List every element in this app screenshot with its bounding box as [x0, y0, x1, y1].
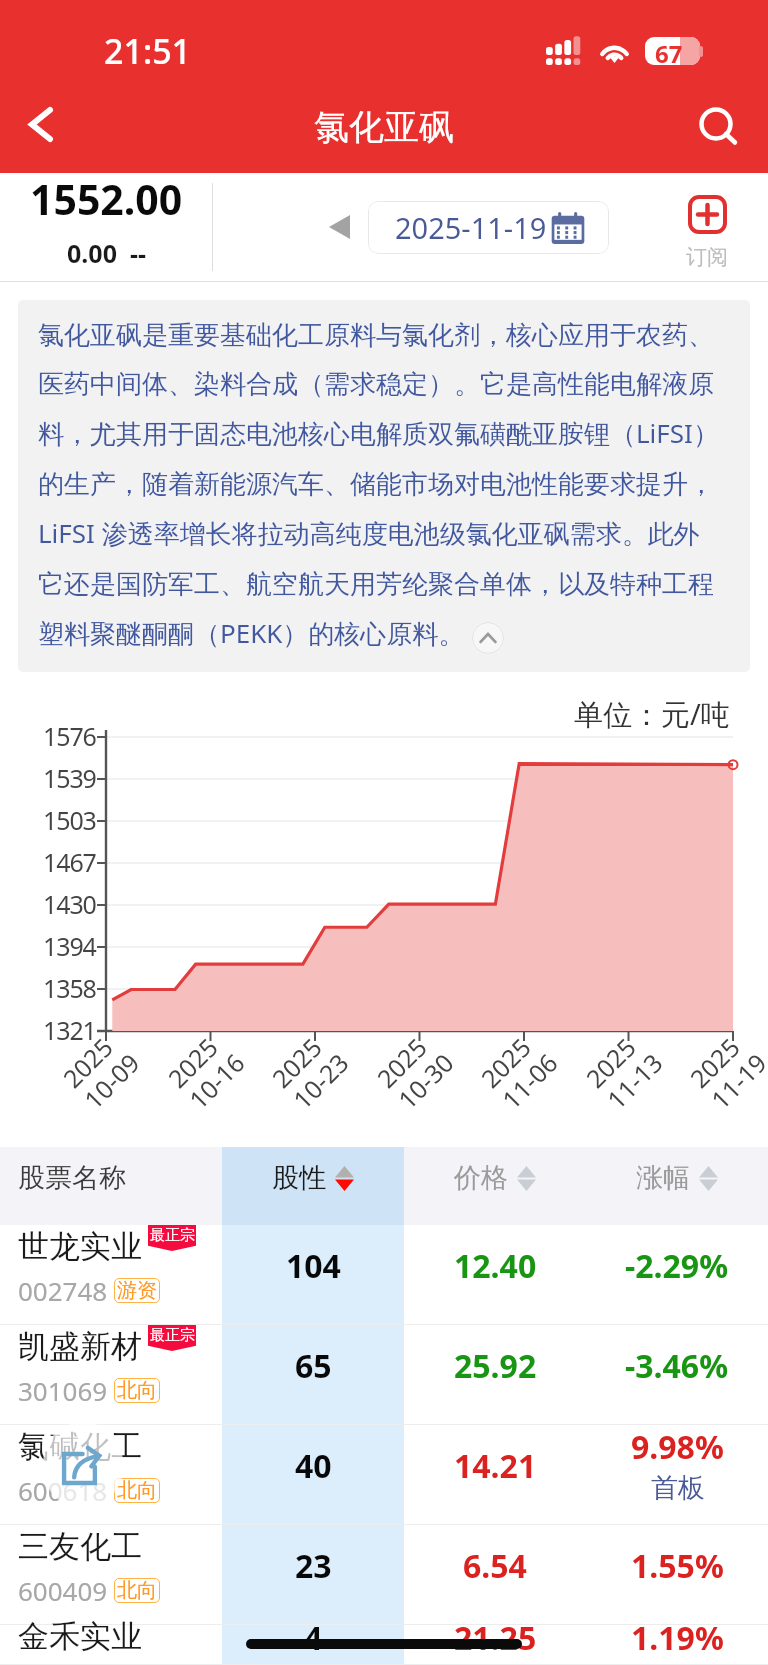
- staticText: 21:51: [104, 28, 192, 74]
- staticText: 1503: [43, 803, 96, 837]
- staticText: 2025 10-30: [369, 1024, 461, 1116]
- button[interactable]: 氯化亚砜是重要基础化工原料与氯化剂，核心应用于农药、 医药中间体、染料合成（需求…: [18, 300, 750, 672]
- staticText: 氯碱化工: [18, 1427, 142, 1466]
- staticText: 最正宗: [150, 1326, 195, 1345]
- staticText: 涨幅: [636, 1161, 690, 1195]
- staticText: -2.29%: [625, 1244, 729, 1288]
- staticText: 1430: [43, 887, 96, 921]
- staticText: 1576: [43, 719, 96, 753]
- staticText: 1467: [43, 845, 96, 879]
- staticText: 2025 10-23: [264, 1024, 356, 1116]
- staticText: 2025 11-13: [578, 1024, 670, 1116]
- staticText: 2025-11-19: [395, 208, 547, 247]
- staticText: 2025 10-16: [160, 1024, 252, 1116]
- button[interactable]: Previous day: [317, 205, 361, 249]
- button[interactable]: 金禾实业: [0, 1625, 768, 1665]
- staticText: 600409: [18, 1573, 108, 1608]
- staticText: 9.98%: [631, 1425, 724, 1469]
- staticText: 股性: [272, 1161, 326, 1195]
- staticText: 600618: [18, 1473, 108, 1508]
- button[interactable]: 世龙实业: [0, 1225, 768, 1325]
- staticText: -3.46%: [625, 1344, 729, 1388]
- button[interactable]: 价格: [404, 1147, 586, 1225]
- staticText: 北向: [117, 1378, 157, 1403]
- staticText: 2025 11-06: [473, 1024, 565, 1116]
- staticText: 股票名称: [18, 1161, 126, 1195]
- staticText: 三友化工: [18, 1527, 142, 1566]
- staticText: 002748: [18, 1273, 108, 1308]
- staticText: 4: [304, 1616, 323, 1656]
- staticText: 游资: [117, 1278, 157, 1303]
- staticText: 0.00 --: [67, 236, 146, 270]
- staticText: 氯化亚砜: [314, 105, 454, 149]
- button[interactable]: Collapse: [472, 622, 504, 654]
- staticText: 最正宗: [150, 1226, 195, 1245]
- button[interactable]: 2025-11-19: [368, 201, 609, 254]
- button[interactable]: 涨幅: [586, 1147, 768, 1225]
- staticText: 北向: [117, 1578, 157, 1603]
- staticText: 氯化亚砜是重要基础化工原料与氯化剂，核心应用于农药、 医药中间体、染料合成（需求…: [38, 319, 719, 651]
- staticText: 104: [286, 1244, 341, 1288]
- button[interactable]: Share: [43, 1422, 123, 1508]
- staticText: 北向: [117, 1478, 157, 1503]
- staticText: 1358: [43, 971, 96, 1005]
- staticText: 1321: [43, 1013, 96, 1047]
- staticText: 世龙实业: [18, 1227, 142, 1266]
- staticText: 2025 10-09: [55, 1024, 147, 1116]
- staticText: 12.40: [454, 1244, 537, 1288]
- staticText: 1.55%: [631, 1544, 724, 1588]
- button[interactable]: 三友化工: [0, 1525, 768, 1625]
- staticText: 1539: [43, 761, 96, 795]
- staticText: 301069: [18, 1373, 108, 1408]
- button[interactable]: 氯碱化工: [0, 1425, 768, 1525]
- staticText: 2025 11-19: [682, 1024, 768, 1116]
- staticText: 1394: [43, 929, 96, 963]
- staticText: 凯盛新材: [18, 1327, 142, 1366]
- staticText: 14.21: [454, 1444, 537, 1488]
- staticText: 金禾实业: [18, 1617, 142, 1656]
- button[interactable]: Back: [1, 82, 81, 167]
- staticText: 40: [295, 1444, 332, 1488]
- staticText: 21.25: [454, 1616, 537, 1656]
- staticText: 价格: [454, 1161, 508, 1195]
- staticText: 订阅: [686, 244, 728, 270]
- button[interactable]: 凯盛新材: [0, 1325, 768, 1425]
- button[interactable]: 股性: [222, 1147, 404, 1225]
- button[interactable]: Search: [674, 82, 762, 167]
- button[interactable]: 订阅: [646, 173, 768, 281]
- staticText: 23: [295, 1544, 332, 1588]
- staticText: 1552.00: [30, 171, 183, 227]
- staticText: 1.19%: [631, 1616, 724, 1656]
- staticText: 67: [655, 37, 683, 65]
- staticText: 65: [295, 1344, 332, 1388]
- staticText: 单位：元/吨: [574, 694, 730, 734]
- staticText: 首板: [651, 1471, 705, 1505]
- staticText: 6.54: [463, 1544, 527, 1588]
- staticText: 25.92: [454, 1344, 537, 1388]
